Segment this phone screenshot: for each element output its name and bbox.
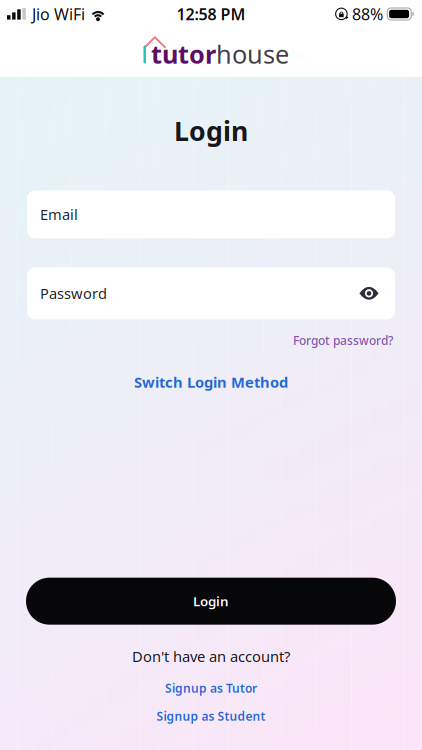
staticText: Signup as Tutor — [165, 680, 257, 696]
staticText: 88% — [352, 3, 383, 25]
button[interactable]: Switch Login Method — [124, 350, 298, 398]
button[interactable]: Login — [26, 578, 396, 625]
staticText: 12:58 PM — [176, 3, 245, 25]
button[interactable]: Show password — [357, 280, 381, 307]
staticText: Login — [193, 592, 229, 610]
staticText: tutor — [151, 37, 216, 71]
staticText: house — [216, 37, 289, 71]
staticText: Don't have an account? — [132, 647, 290, 666]
staticText: Jio WiFi — [32, 3, 85, 25]
staticText: Email — [40, 205, 78, 224]
button[interactable]: Forgot password? — [0, 319, 422, 350]
staticText: Switch Login Method — [134, 372, 288, 392]
button[interactable]: Signup as Tutor — [145, 666, 277, 698]
button[interactable]: Signup as Student — [136, 698, 285, 726]
staticText: Login — [174, 113, 248, 148]
staticText: Signup as Student — [156, 708, 265, 724]
staticText: Forgot password? — [293, 332, 393, 348]
staticText: Password — [40, 284, 107, 303]
